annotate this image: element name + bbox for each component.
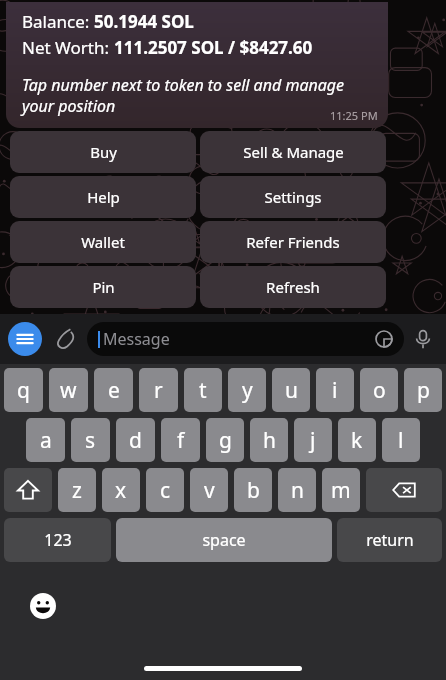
button[interactable]: Menu (8, 322, 42, 356)
staticText: b (247, 476, 260, 505)
staticText: x (115, 476, 127, 505)
staticText: e (108, 376, 120, 405)
button[interactable]: h (250, 418, 288, 462)
button[interactable]: t (184, 368, 222, 412)
staticText: n (291, 476, 304, 505)
staticText: q (17, 376, 30, 405)
staticText: k (351, 426, 363, 455)
button[interactable]: Settings (200, 176, 386, 218)
staticText: Help (87, 187, 120, 207)
button[interactable]: y (228, 368, 266, 412)
button[interactable]: Message (87, 322, 404, 356)
button[interactable]: g (206, 418, 244, 462)
staticText: v (204, 476, 215, 505)
staticText: o (373, 376, 386, 405)
staticText: w (60, 376, 77, 405)
button[interactable]: Voice message (408, 324, 438, 354)
staticText: a (40, 426, 52, 455)
staticText: t (199, 376, 207, 405)
button[interactable]: n (278, 468, 316, 512)
staticText: r (154, 376, 163, 405)
button[interactable]: Refer Friends (200, 221, 386, 263)
button[interactable]: k (338, 418, 376, 462)
staticText: z (72, 476, 82, 505)
button[interactable]: i (316, 368, 354, 412)
staticText: Tap number next to token to sell and man… (22, 74, 374, 117)
button[interactable]: c (146, 468, 184, 512)
button[interactable]: s (71, 418, 110, 462)
staticText: d (129, 426, 142, 455)
button[interactable]: d (116, 418, 155, 462)
button[interactable]: z (58, 468, 96, 512)
staticText: p (417, 376, 430, 405)
button[interactable]: Buy (10, 131, 196, 173)
staticText: Balance: (22, 10, 94, 33)
button[interactable]: return (337, 518, 442, 562)
button[interactable]: Wallet (10, 221, 196, 263)
staticText: s (85, 426, 96, 455)
staticText: m (331, 476, 351, 505)
button[interactable]: b (234, 468, 272, 512)
staticText: Net Worth: (22, 36, 114, 59)
staticText: c (160, 476, 171, 505)
staticText: space (202, 529, 246, 551)
staticText: f (177, 426, 185, 455)
button[interactable]: q (4, 368, 43, 412)
staticText: Refresh (266, 277, 320, 297)
button[interactable]: Shift (4, 468, 52, 512)
button[interactable]: w (49, 368, 88, 412)
staticText: return (366, 529, 414, 551)
button[interactable]: space (116, 518, 332, 562)
button[interactable]: r (139, 368, 178, 412)
staticText: 50.1944 SOL (94, 10, 194, 33)
staticText: g (219, 426, 232, 455)
button[interactable]: Pin (10, 266, 196, 308)
button[interactable]: Attach (50, 323, 82, 355)
staticText: Message (103, 328, 170, 350)
staticText: Buy (90, 142, 117, 162)
button[interactable]: l (382, 418, 420, 462)
button[interactable]: Stickers (372, 327, 396, 351)
staticText: Pin (92, 277, 115, 297)
staticText: u (285, 376, 298, 405)
button[interactable]: m (322, 468, 360, 512)
staticText: 123 (44, 529, 72, 551)
button[interactable]: u (272, 368, 310, 412)
staticText: 111.2507 SOL / $8427.60 (114, 36, 313, 59)
staticText: Wallet (81, 232, 125, 252)
button[interactable]: x (102, 468, 140, 512)
staticText: Sell & Manage (243, 142, 344, 162)
button[interactable]: p (404, 368, 442, 412)
button[interactable]: 123 (4, 518, 111, 562)
button[interactable]: Refresh (200, 266, 386, 308)
staticText: y (242, 376, 253, 405)
staticText: Settings (264, 187, 322, 207)
staticText: 11:25 PM (330, 108, 378, 123)
button[interactable]: o (360, 368, 398, 412)
staticText: Refer Friends (246, 232, 340, 252)
button[interactable]: Emoji (29, 592, 57, 620)
button[interactable]: f (161, 418, 200, 462)
staticText: i (332, 376, 338, 405)
staticText: l (398, 426, 404, 455)
button[interactable]: j (294, 418, 332, 462)
button[interactable]: a (26, 418, 65, 462)
button[interactable]: Sell & Manage (200, 131, 386, 173)
button[interactable]: e (94, 368, 133, 412)
button[interactable]: Help (10, 176, 196, 218)
staticText: h (263, 426, 276, 455)
staticText: j (310, 426, 316, 455)
button[interactable]: v (190, 468, 228, 512)
button[interactable]: Backspace (366, 468, 442, 512)
